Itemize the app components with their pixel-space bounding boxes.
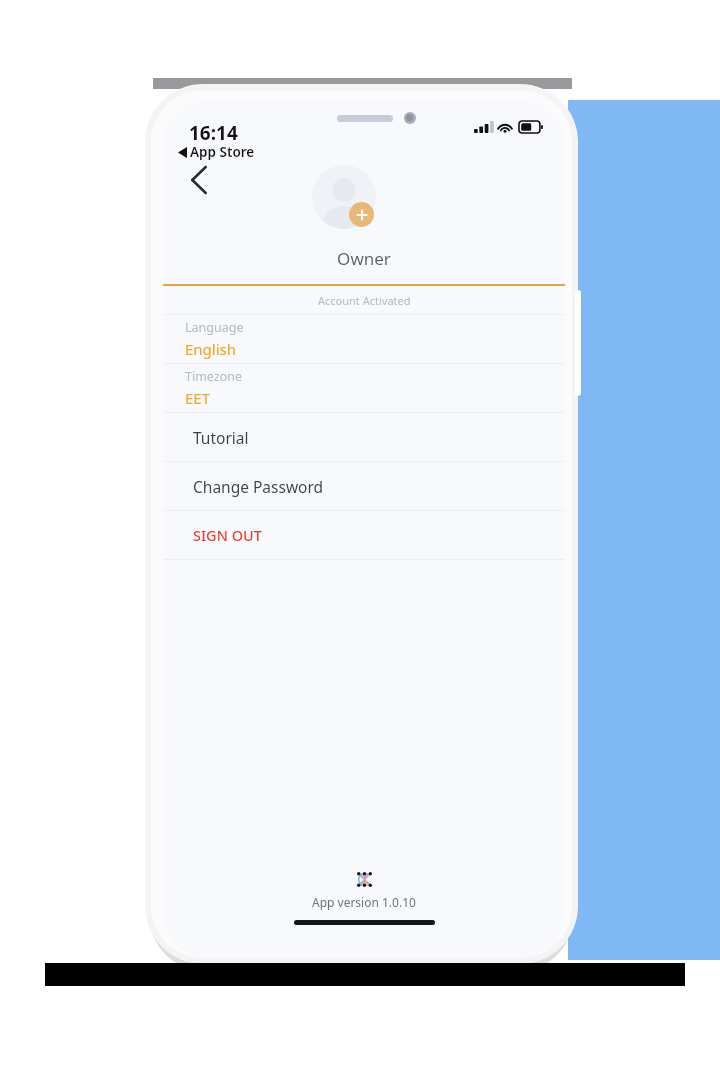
button[interactable]: Timezone (163, 364, 565, 412)
staticText: Language (185, 319, 244, 336)
button[interactable]: Add photo (349, 202, 374, 227)
staticText: Account Activated (318, 293, 411, 308)
button[interactable]: Change Password (163, 462, 565, 510)
button[interactable]: SIGN OUT (163, 511, 565, 559)
staticText: App Store (190, 143, 255, 161)
staticText: EET (185, 388, 211, 408)
staticText: App version 1.0.10 (312, 894, 416, 910)
staticText: Owner (163, 247, 565, 270)
button[interactable]: Change profile photo (312, 165, 376, 229)
staticText: 16:14 (189, 120, 238, 146)
button[interactable]: Back (175, 156, 223, 204)
button[interactable]: Language (163, 315, 565, 363)
staticText: SIGN OUT (193, 525, 262, 545)
button[interactable]: Tutorial (163, 413, 565, 461)
staticText: Tutorial (193, 427, 249, 448)
staticText: English (185, 339, 237, 359)
staticText: Change Password (193, 476, 324, 497)
staticText: Timezone (185, 368, 243, 385)
